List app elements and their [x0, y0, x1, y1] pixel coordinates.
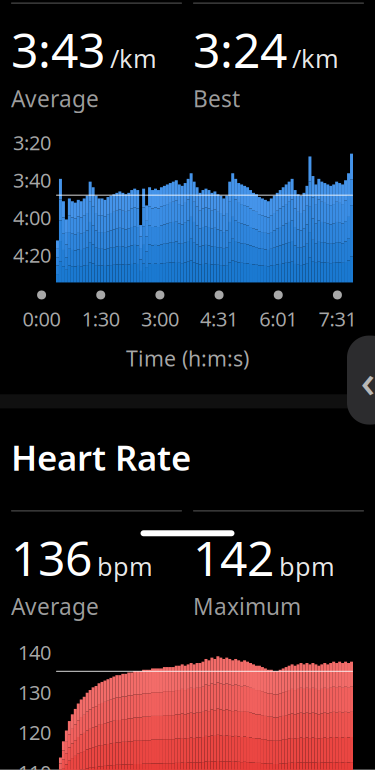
- staticText: 4:00: [13, 204, 51, 231]
- staticText: 4:20: [13, 242, 51, 268]
- staticText: bpm: [279, 549, 335, 583]
- staticText: 3:00: [141, 305, 179, 332]
- staticText: 142: [193, 525, 274, 589]
- staticText: 6:01: [259, 305, 297, 332]
- staticText: 136: [11, 525, 92, 589]
- staticText: 1:30: [82, 305, 120, 332]
- staticText: 0:00: [23, 305, 61, 332]
- staticText: /km: [292, 41, 339, 75]
- staticText: Time (h:m:s): [126, 344, 249, 372]
- staticText: 3:40: [13, 167, 51, 193]
- staticText: 4:31: [200, 305, 238, 332]
- staticText: Average: [11, 591, 99, 621]
- staticText: 3:20: [13, 129, 51, 156]
- staticText: 130: [18, 679, 51, 705]
- staticText: Heart Rate: [11, 434, 191, 480]
- staticText: 140: [18, 639, 51, 665]
- staticText: bpm: [97, 549, 153, 583]
- staticText: Maximum: [193, 591, 301, 621]
- staticText: Best: [193, 83, 240, 113]
- staticText: /km: [110, 41, 157, 75]
- staticText: 110: [18, 759, 51, 770]
- button[interactable]: Show panel: [347, 336, 375, 425]
- staticText: ‹: [360, 350, 375, 410]
- staticText: 3:43: [11, 18, 105, 81]
- staticText: Average: [11, 83, 99, 113]
- staticText: 3:24: [193, 18, 287, 81]
- staticText: 120: [18, 719, 51, 745]
- staticText: 7:31: [318, 305, 356, 332]
